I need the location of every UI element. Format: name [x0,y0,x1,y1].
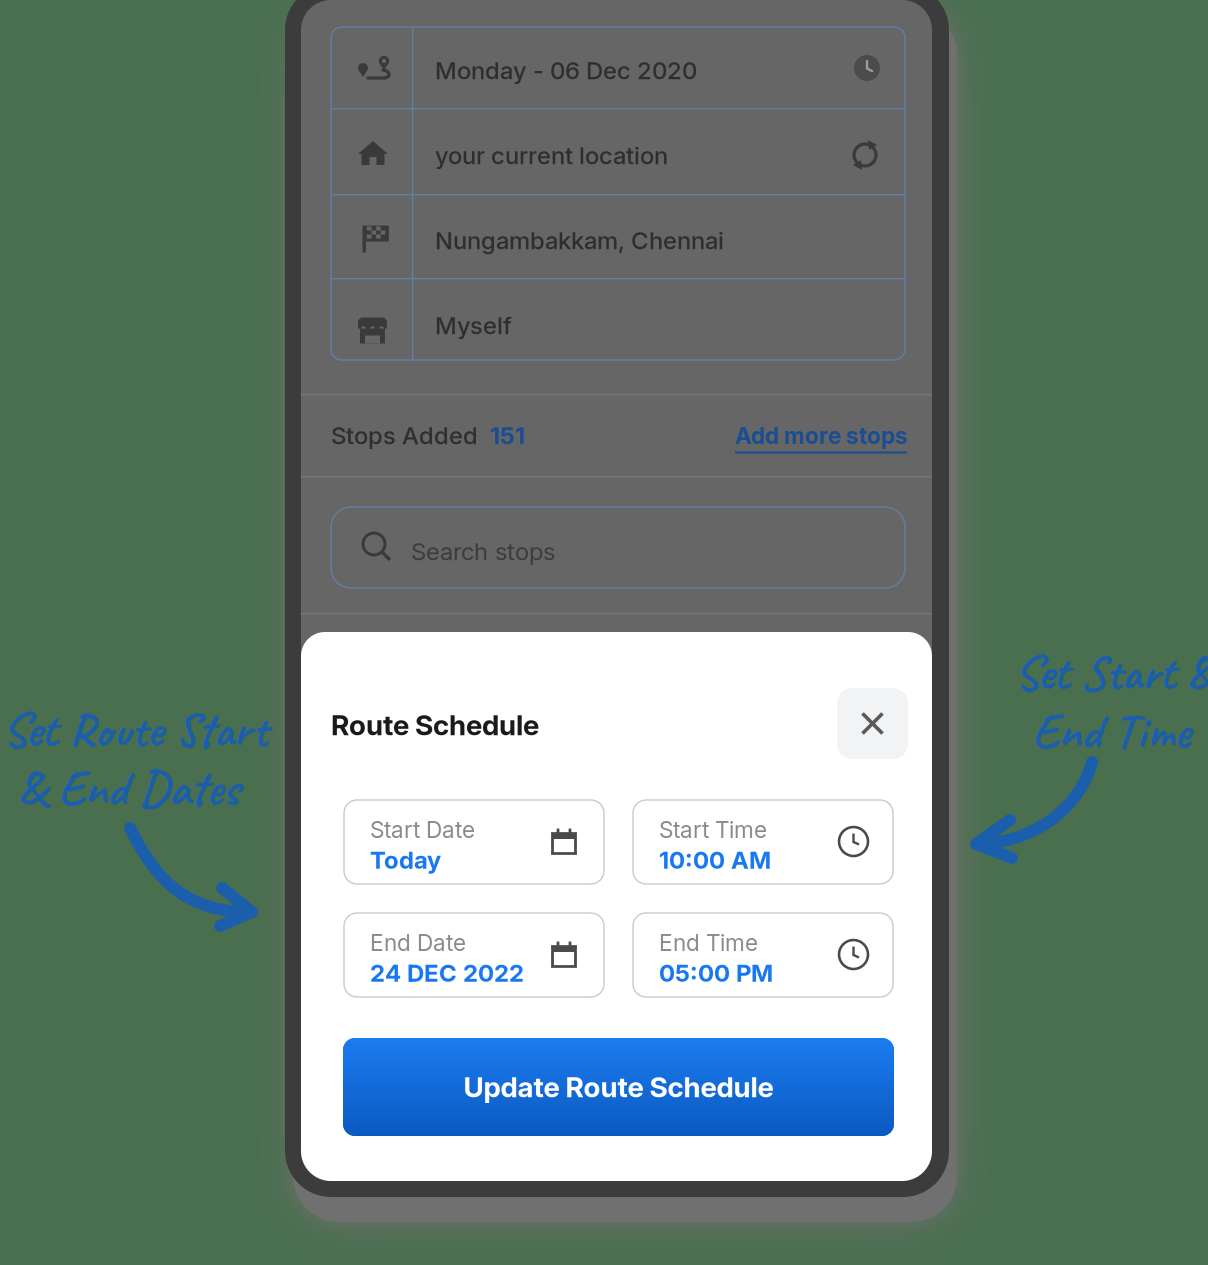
staticText: Set Route Start [2,699,267,761]
staticText: Set Start & [1014,642,1208,704]
staticText: Myself [435,311,512,340]
staticText: 151 [478,421,525,450]
staticText: Monday - 06 Dec 2020 [435,56,697,85]
staticText: 05:00 PM [659,958,773,987]
staticText: End Time [659,929,758,956]
staticText: Stops Added [331,421,478,450]
button[interactable]: Update Route Schedule [343,1038,894,1136]
button[interactable]: Start Date [344,800,604,884]
button[interactable]: Close [837,688,908,759]
staticText: Update Route Schedule [463,1070,773,1104]
staticText: Today [370,845,441,874]
staticText: Start Date [370,816,475,843]
staticText: Search stops [411,537,555,566]
staticText: End Date [370,929,466,956]
button[interactable]: End Date [344,913,604,997]
staticText: Route Schedule [331,708,539,742]
staticText: Nungambakkam, Chennai [435,226,724,255]
staticText: 24 DEC 2022 [370,958,524,987]
staticText: Start Time [659,816,767,843]
button[interactable]: End Time [633,913,893,997]
staticText: Add more stops [735,422,908,449]
staticText: your current location [435,141,668,170]
button[interactable]: Start Time [633,800,893,884]
staticText: & End Dates [18,757,239,819]
staticText: End Time [1032,700,1190,762]
staticText: 10:00 AM [659,845,771,874]
